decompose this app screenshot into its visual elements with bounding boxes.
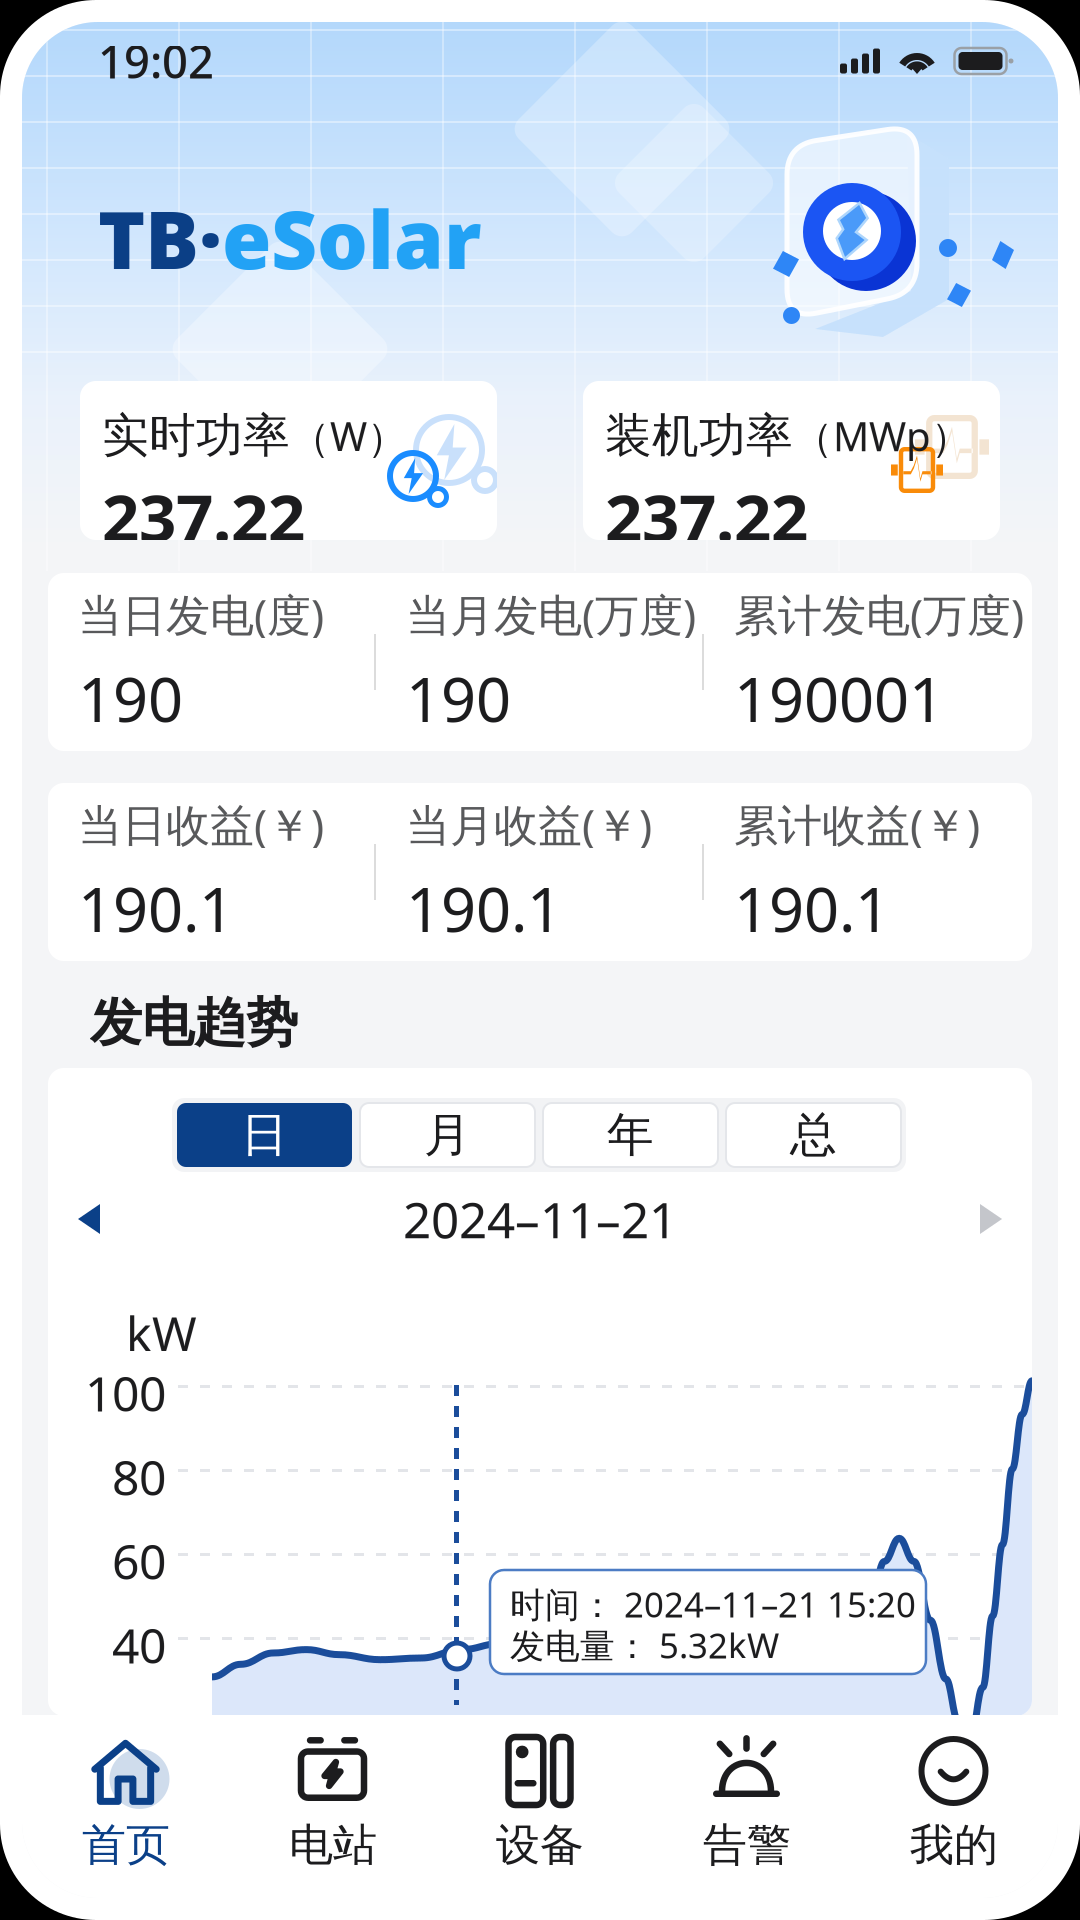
button[interactable]: 电站 <box>229 1715 436 1898</box>
staticText: eSolar <box>222 185 482 291</box>
button[interactable]: 年 <box>543 1103 718 1167</box>
staticText: 60 <box>112 1529 166 1593</box>
staticText: 月 <box>424 1106 471 1164</box>
staticText: TB <box>98 185 199 291</box>
button[interactable]: 我的 <box>850 1715 1057 1898</box>
staticText: 237.22 <box>102 473 305 560</box>
button[interactable]: 日 <box>177 1103 352 1167</box>
staticText: 总 <box>790 1106 837 1164</box>
button[interactable]: 装机功率 <box>583 381 1000 540</box>
button[interactable]: 设备 <box>436 1715 643 1898</box>
button[interactable]: Next day <box>962 1186 1020 1252</box>
staticText: 当月发电(万度) <box>406 585 696 643</box>
button[interactable]: 实时功率 <box>80 381 497 540</box>
staticText: 40 <box>112 1613 166 1677</box>
staticText: 累计发电(万度) <box>734 585 1024 643</box>
staticText: （MWp） <box>793 409 971 462</box>
staticText: 实时功率 <box>102 407 290 464</box>
staticText: 当月收益(￥) <box>406 795 652 853</box>
button[interactable]: 当月收益(￥) <box>376 811 704 933</box>
staticText: 年 <box>607 1106 654 1164</box>
staticText: 时间： 2024–11–21 15:20 <box>510 1581 916 1627</box>
button[interactable]: 累计发电(万度) <box>704 601 1032 723</box>
staticText: 发电量： 5.32kW <box>510 1622 779 1668</box>
staticText: 190.1 <box>78 867 234 949</box>
staticText: 首页 <box>82 1818 170 1872</box>
staticText: · <box>199 185 222 291</box>
staticText: 装机功率 <box>605 407 793 464</box>
button[interactable]: 当月发电(万度) <box>376 601 704 723</box>
staticText: kW <box>126 1301 197 1365</box>
staticText: 190001 <box>734 657 944 739</box>
button[interactable]: 累计收益(￥) <box>704 811 1032 933</box>
button[interactable]: 当日发电(度) <box>48 601 376 723</box>
button[interactable]: 首页 <box>22 1715 229 1898</box>
staticText: 2024–11–21 <box>403 1186 677 1252</box>
staticText: 190.1 <box>406 867 562 949</box>
staticText: 190 <box>78 657 183 739</box>
staticText: 237.22 <box>605 473 808 560</box>
staticText: 累计收益(￥) <box>734 795 980 853</box>
staticText: 发电趋势 <box>90 991 298 1055</box>
staticText: 100 <box>85 1361 166 1425</box>
staticText: 190 <box>406 657 511 739</box>
button[interactable]: Previous day <box>60 1186 118 1252</box>
button[interactable]: 月 <box>360 1103 535 1167</box>
button[interactable]: 当日收益(￥) <box>48 811 376 933</box>
staticText: 设备 <box>496 1818 584 1872</box>
staticText: 当日收益(￥) <box>78 795 324 853</box>
staticText: 告警 <box>703 1818 791 1872</box>
staticText: 日 <box>241 1106 288 1164</box>
staticText: 电站 <box>289 1818 377 1872</box>
staticText: 19:02 <box>98 31 214 91</box>
staticText: 当日发电(度) <box>78 585 324 643</box>
button[interactable]: 告警 <box>643 1715 850 1898</box>
button[interactable]: 总 <box>726 1103 901 1167</box>
staticText: 我的 <box>910 1818 998 1872</box>
staticText: 190.1 <box>734 867 890 949</box>
staticText: （W） <box>290 409 407 462</box>
staticText: 80 <box>112 1445 166 1509</box>
